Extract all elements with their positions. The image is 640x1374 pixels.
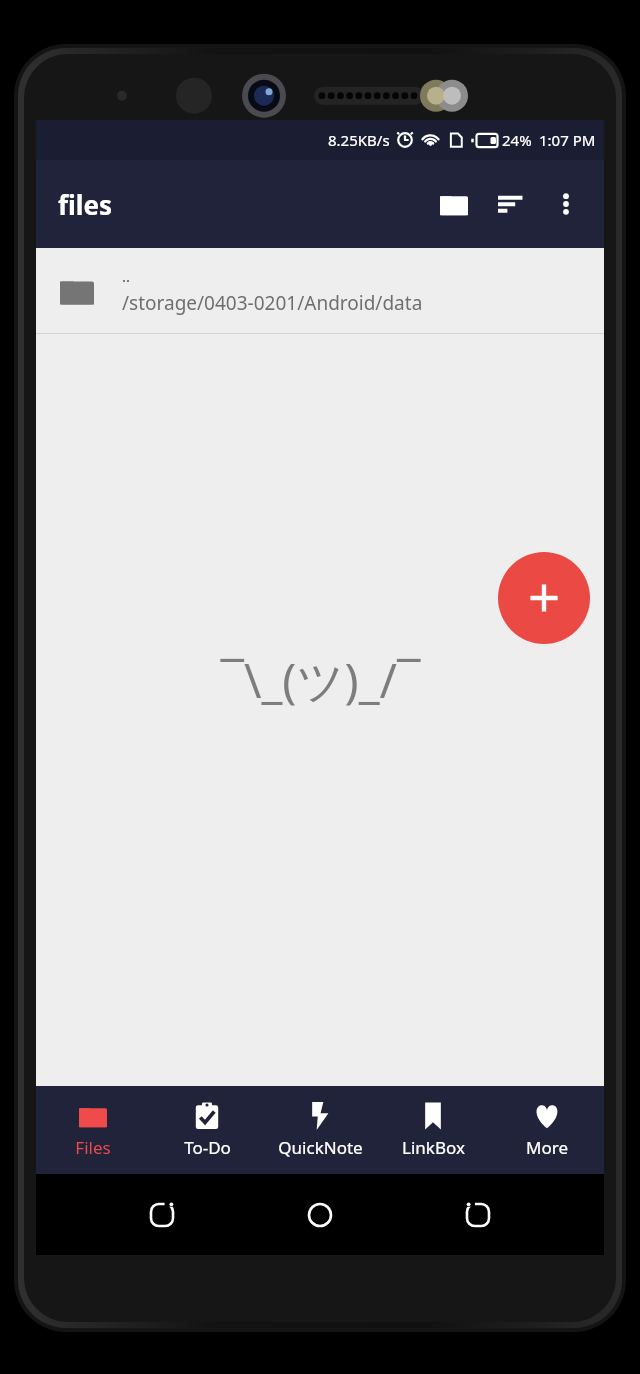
button[interactable]: QuickNote — [264, 1096, 376, 1165]
staticText: LinkBox — [402, 1136, 465, 1159]
staticText: Files — [75, 1136, 111, 1159]
staticText: 8.25KB/s — [328, 130, 390, 150]
staticText: 1:07 PM — [539, 130, 596, 150]
staticText: files — [58, 187, 113, 222]
button[interactable]: Recent apps — [130, 1183, 194, 1247]
button[interactable]: New folder — [426, 176, 482, 232]
staticText: To-Do — [184, 1136, 231, 1159]
staticText: ¯\_(ツ)_/¯ — [220, 648, 421, 712]
button[interactable]: LinkBox — [377, 1096, 489, 1165]
button[interactable]: Back — [446, 1183, 510, 1247]
button[interactable]: .. — [36, 248, 604, 333]
staticText: /storage/0403-0201/Android/data — [122, 290, 423, 316]
staticText: 24% — [502, 130, 532, 150]
button[interactable]: More options — [538, 176, 594, 232]
button[interactable]: Sort — [482, 176, 538, 232]
button[interactable]: More — [491, 1096, 603, 1165]
staticText: QuickNote — [278, 1136, 363, 1159]
staticText: .. — [122, 266, 131, 286]
button[interactable]: Files — [37, 1096, 149, 1165]
staticText: More — [526, 1136, 568, 1159]
button[interactable]: To-Do — [151, 1096, 263, 1165]
button[interactable]: Home — [288, 1183, 352, 1247]
button[interactable]: Add — [498, 552, 590, 644]
